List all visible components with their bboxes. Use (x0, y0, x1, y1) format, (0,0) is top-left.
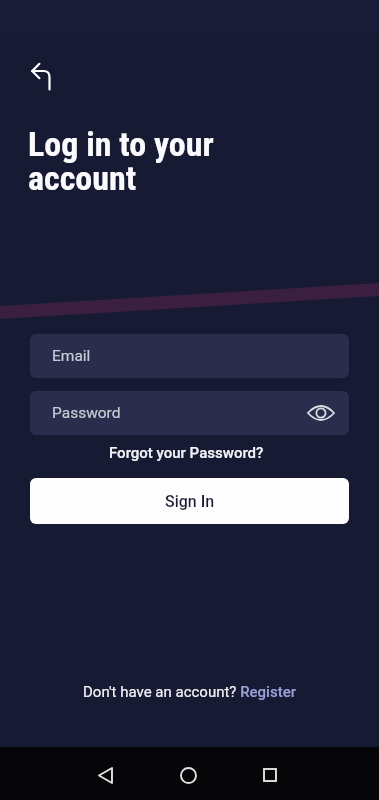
staticText: Password (52, 404, 121, 422)
button[interactable]: Don't have an account? Register (83, 683, 297, 701)
button[interactable]: Password (30, 391, 349, 435)
staticText: Forgot your Password? (109, 444, 264, 462)
staticText: Log in to your account (28, 124, 214, 199)
button[interactable] (21, 53, 61, 93)
button[interactable]: Email (30, 334, 349, 378)
staticText: Email (52, 347, 91, 365)
button[interactable] (250, 750, 290, 800)
staticText: Sign In (165, 492, 215, 511)
button[interactable] (85, 750, 125, 800)
button[interactable] (168, 750, 208, 800)
staticText: Don't have an account? Register (83, 683, 297, 701)
button[interactable]: Sign In (30, 478, 349, 524)
button[interactable]: Forgot your Password? (109, 444, 264, 462)
